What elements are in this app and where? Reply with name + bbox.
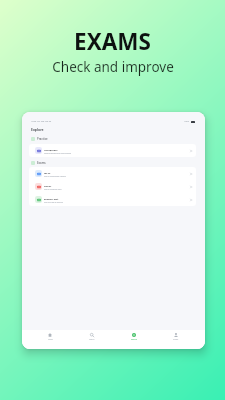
button[interactable]: TOEFL: [29, 180, 196, 193]
button[interactable]: Profile: [155, 330, 197, 340]
staticText: Test for university entry: [44, 188, 62, 190]
staticText: IELTS: [44, 171, 51, 174]
staticText: Vocabulary: [44, 148, 58, 151]
button[interactable]: IELTS: [29, 167, 196, 180]
staticText: Explore: [31, 127, 44, 132]
button[interactable]: Explore: [113, 330, 155, 340]
staticText: Profile: [173, 338, 179, 340]
button[interactable]: Home: [29, 330, 71, 340]
staticText: EXAMS: [74, 26, 151, 57]
button[interactable]: English Test: [29, 193, 196, 206]
staticText: English Test: [44, 197, 59, 200]
staticText: Practice: [37, 137, 48, 141]
staticText: Search: [89, 338, 95, 340]
staticText: Exams: [37, 161, 46, 165]
staticText: Test for international ranking: [44, 175, 66, 177]
button[interactable]: Vocabulary: [29, 144, 196, 157]
staticText: 10:30 AM Tue Nov 30: [31, 120, 52, 123]
staticText: Home: [48, 338, 53, 340]
staticText: Explore: [131, 338, 137, 340]
staticText: Practice new words & their meaning: [44, 152, 72, 154]
staticText: Check and improve: [52, 58, 174, 76]
button[interactable]: Search: [71, 330, 113, 340]
staticText: 100%: [184, 120, 190, 123]
staticText: TOEFL: [44, 184, 52, 187]
staticText: Test your level & improve: [44, 201, 63, 203]
